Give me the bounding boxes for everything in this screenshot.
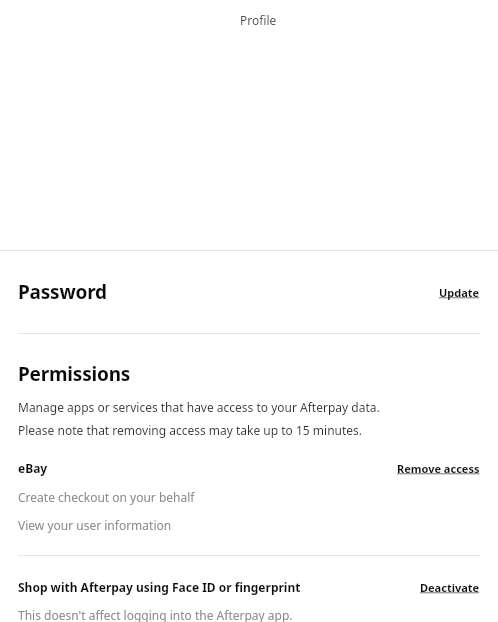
button[interactable]: Deactivate: [420, 580, 480, 595]
staticText: This doesn't affect logging into the Aft…: [18, 607, 293, 622]
staticText: Please note that removing access may tak…: [18, 422, 363, 438]
staticText: Deactivate: [420, 580, 480, 595]
staticText: Password: [18, 279, 107, 305]
staticText: Remove access: [397, 461, 480, 476]
staticText: Update: [439, 285, 480, 300]
staticText: eBay: [18, 460, 397, 476]
button[interactable]: Update: [439, 285, 480, 300]
staticText: Create checkout on your behalf: [18, 489, 195, 505]
staticText: Profile: [240, 12, 277, 28]
staticText: View your user information: [18, 517, 172, 533]
button[interactable]: Remove access: [397, 461, 480, 476]
staticText: Shop with Afterpay using Face ID or fing…: [18, 579, 420, 595]
staticText: Permissions: [18, 361, 131, 387]
button[interactable]: Profile: [18, 0, 498, 43]
staticText: Manage apps or services that have access…: [18, 399, 380, 415]
